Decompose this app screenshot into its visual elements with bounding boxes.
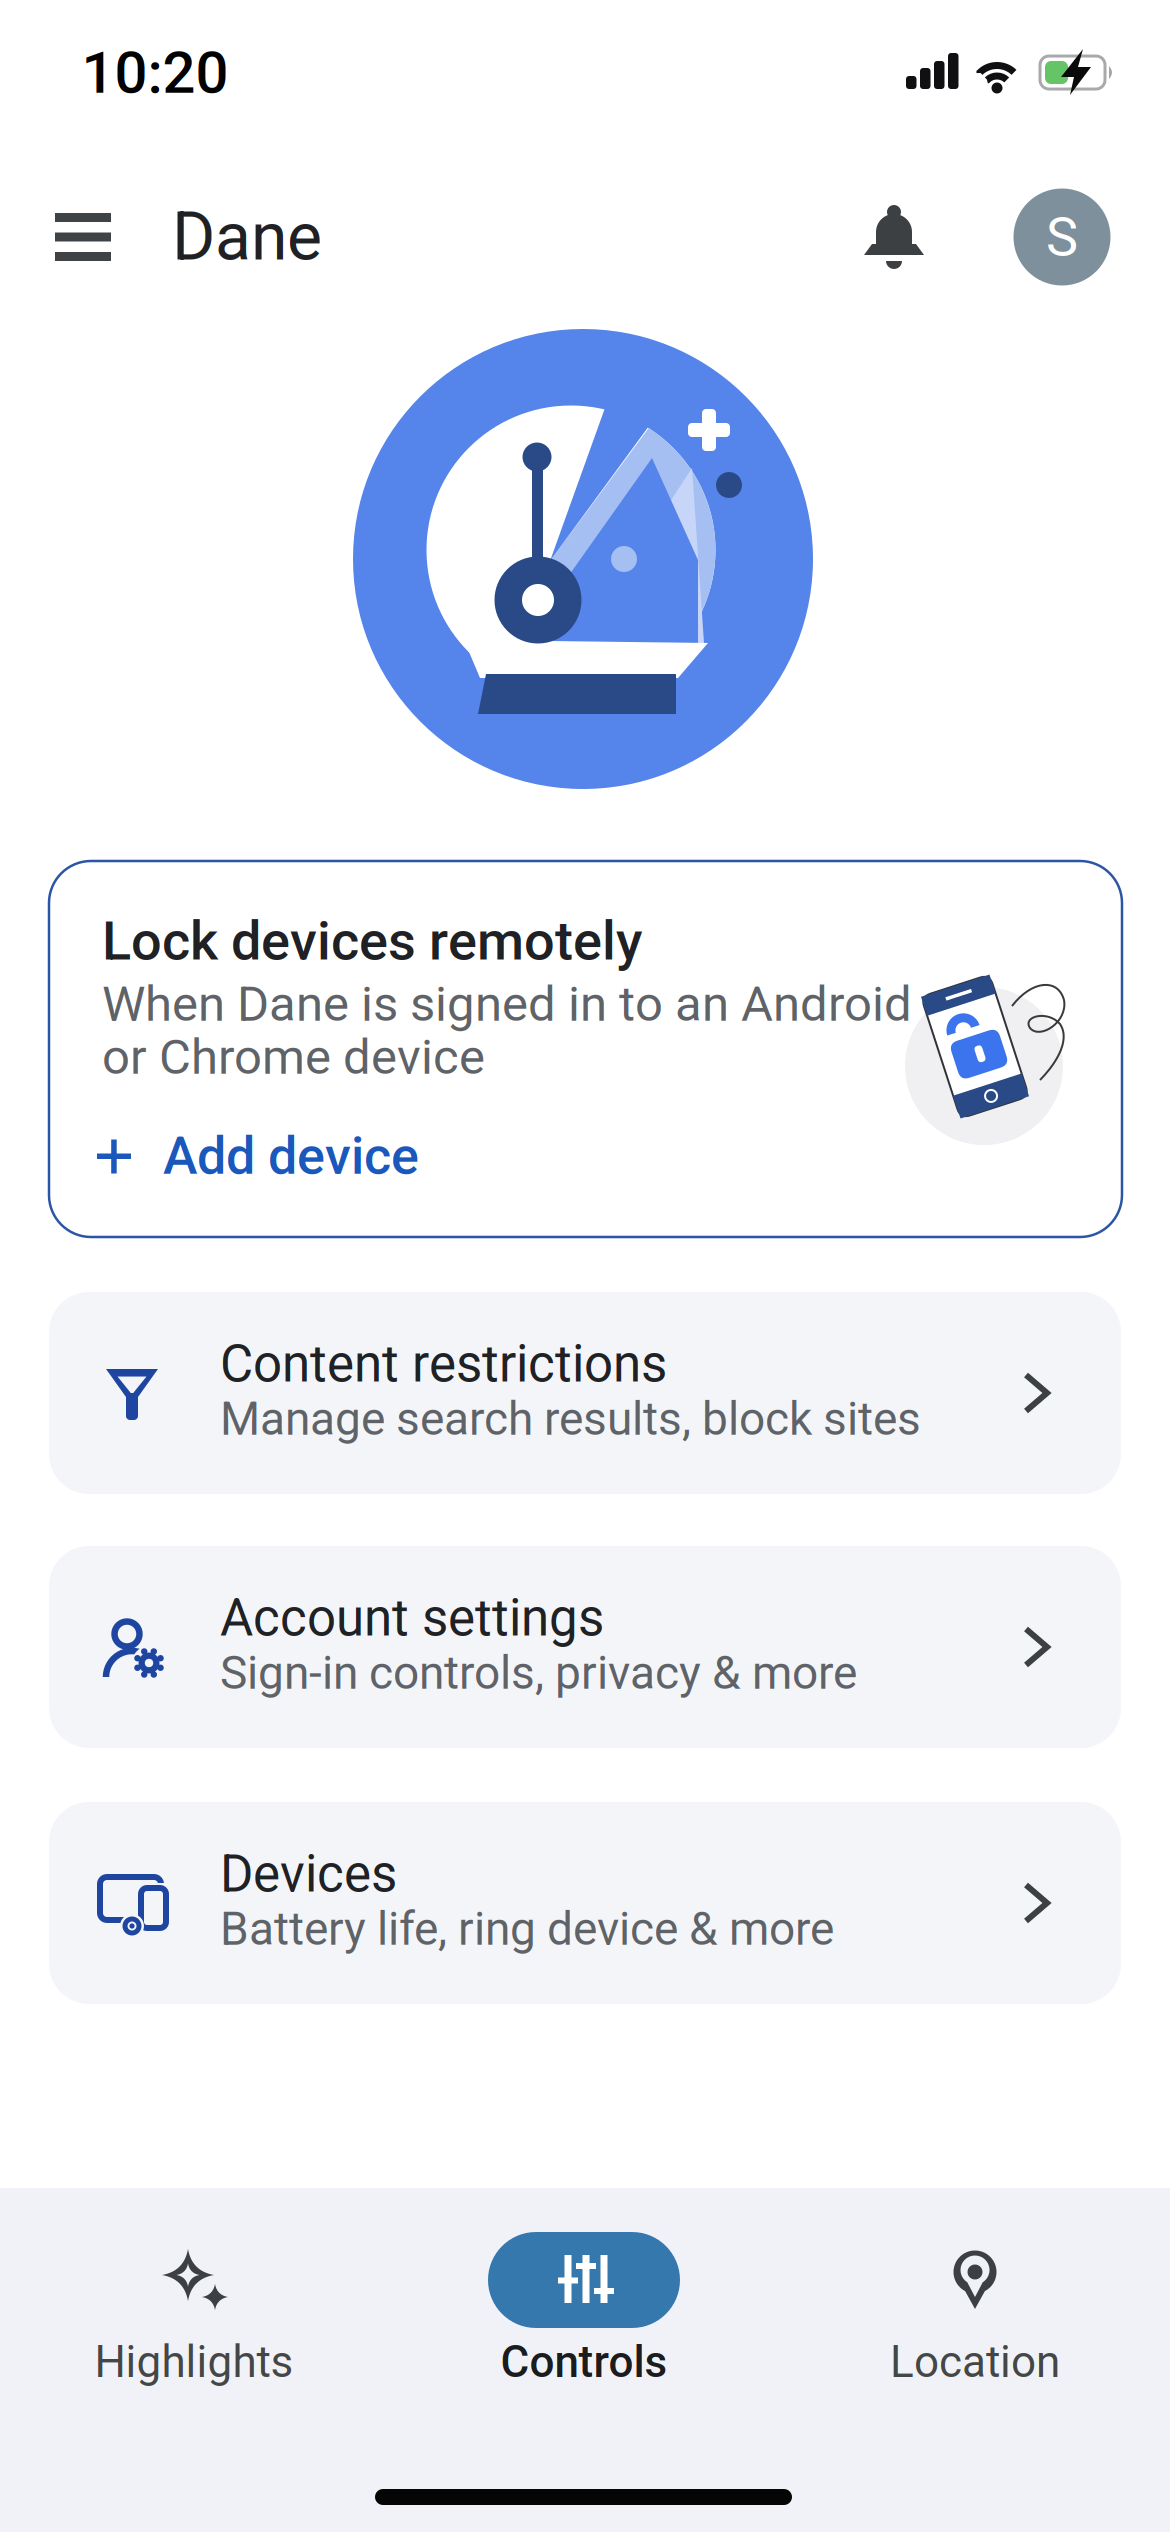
staticText: Highlights bbox=[94, 2336, 293, 2388]
button[interactable]: Content restrictions bbox=[49, 1292, 1121, 1494]
staticText: S bbox=[1046, 205, 1078, 269]
staticText: Account settings bbox=[220, 1588, 604, 1648]
button[interactable]: Account bbox=[1013, 188, 1110, 285]
button[interactable]: Controls bbox=[464, 2168, 704, 2388]
button[interactable]: Highlights bbox=[74, 2168, 314, 2388]
staticText: 10:20 bbox=[81, 39, 228, 107]
button[interactable]: Menu bbox=[0, 0, 1170, 2532]
staticText: Lock devices remotely bbox=[102, 909, 642, 973]
button[interactable]: Add device bbox=[71, 1104, 551, 1208]
staticText: Battery life, ring device & more bbox=[220, 1902, 834, 1956]
button[interactable]: Notifications bbox=[0, 0, 1170, 2532]
staticText: Location bbox=[890, 2336, 1060, 2388]
staticText: Manage search results, block sites bbox=[220, 1392, 921, 1446]
staticText: When Dane is signed in to an Android bbox=[102, 975, 912, 1033]
button[interactable]: Devices bbox=[49, 1802, 1121, 2004]
button[interactable]: Account settings bbox=[49, 1546, 1121, 1748]
staticText: or Chrome device bbox=[102, 1028, 485, 1086]
staticText: Controls bbox=[500, 2336, 667, 2388]
staticText: Dane bbox=[172, 198, 322, 276]
staticText: Sign-in controls, privacy & more bbox=[220, 1646, 857, 1700]
staticText: Devices bbox=[220, 1844, 397, 1904]
button[interactable]: Location bbox=[855, 2168, 1095, 2388]
staticText: Content restrictions bbox=[220, 1334, 667, 1394]
staticText: Add device bbox=[163, 1125, 419, 1186]
